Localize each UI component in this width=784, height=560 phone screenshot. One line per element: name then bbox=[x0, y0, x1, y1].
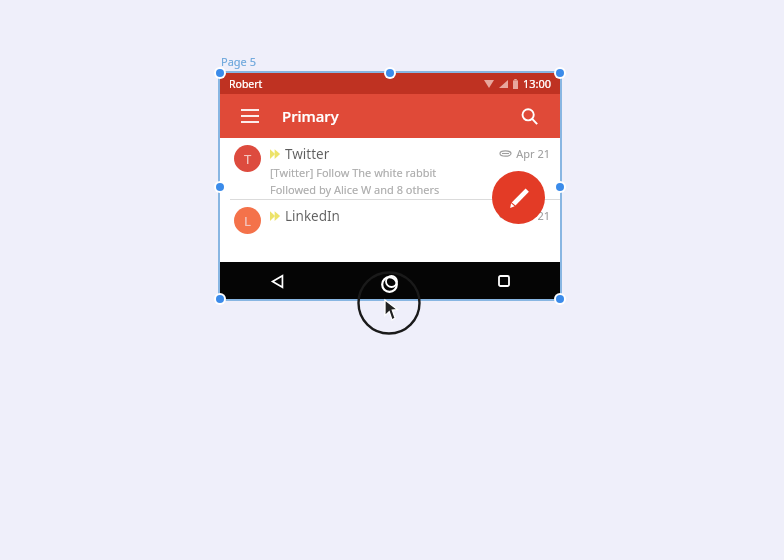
staticText: Twitter bbox=[285, 145, 330, 163]
staticText: LinkedIn bbox=[285, 207, 340, 225]
button[interactable]: Open navigation menu bbox=[238, 104, 262, 128]
button[interactable]: Back bbox=[262, 266, 292, 296]
staticText: Page 5 bbox=[221, 54, 256, 69]
button[interactable]: Compose bbox=[492, 171, 545, 224]
button[interactable]: Home bbox=[376, 266, 406, 296]
button[interactable]: Search bbox=[516, 103, 542, 129]
staticText: 13:00 bbox=[523, 76, 552, 91]
staticText: T bbox=[244, 150, 252, 168]
button[interactable]: T bbox=[220, 138, 560, 199]
button[interactable]: L bbox=[220, 200, 560, 261]
staticText: Apr 21 bbox=[516, 146, 550, 161]
button[interactable]: Recent apps bbox=[489, 266, 519, 296]
staticText: Apr 21 bbox=[516, 208, 550, 223]
staticText: L bbox=[244, 212, 251, 230]
staticText: Primary bbox=[282, 106, 339, 126]
staticText: Robert bbox=[229, 77, 263, 91]
staticText: Followed by Alice W and 8 others bbox=[270, 182, 440, 197]
staticText: [Twitter] Follow The white rabbit bbox=[270, 165, 437, 180]
